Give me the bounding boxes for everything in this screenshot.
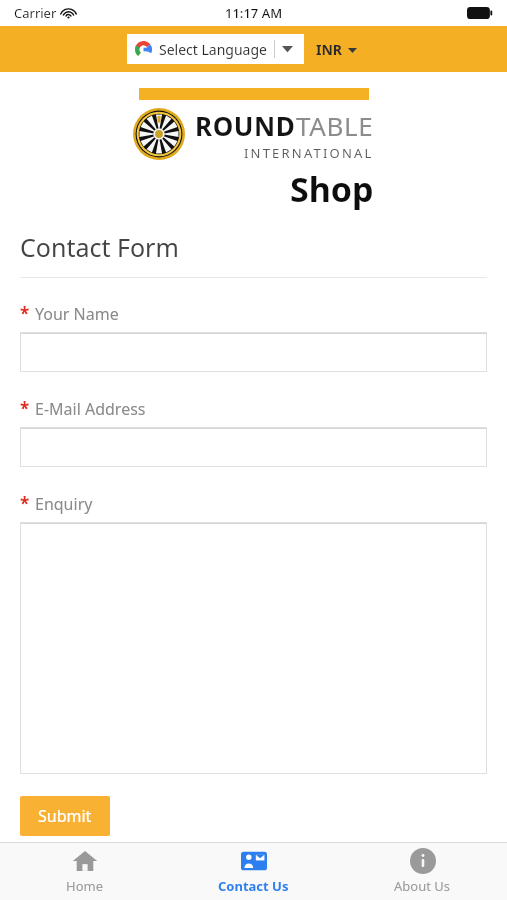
staticText: Enquiry: [35, 493, 93, 515]
button[interactable]: About Us: [338, 843, 507, 900]
staticText: Carrier: [14, 4, 57, 22]
button[interactable]: [20, 332, 487, 372]
button[interactable]: INR: [316, 40, 357, 59]
staticText: *: [20, 492, 30, 515]
staticText: 11:17 AM: [225, 4, 283, 22]
button[interactable]: Contact Us: [169, 843, 338, 900]
staticText: Home: [66, 877, 103, 895]
staticText: About Us: [394, 877, 451, 895]
button[interactable]: Submit: [20, 796, 110, 836]
staticText: ROUND: [195, 108, 296, 143]
staticText: Your Name: [35, 303, 119, 325]
staticText: INTERNATIONAL: [244, 144, 374, 162]
staticText: *: [20, 302, 30, 325]
staticText: TABLE: [296, 108, 374, 143]
staticText: Shop: [290, 166, 374, 212]
button[interactable]: Home: [0, 843, 169, 900]
other: Contact Us: [241, 848, 267, 874]
staticText: INR: [316, 40, 343, 59]
staticText: Submit: [38, 805, 92, 827]
button[interactable]: [20, 427, 487, 467]
staticText: E-Mail Address: [35, 398, 146, 420]
button[interactable]: Select Language: [127, 34, 304, 64]
other: About Us: [410, 848, 436, 874]
staticText: *: [20, 397, 30, 420]
other: Home: [72, 848, 98, 874]
button[interactable]: [20, 522, 487, 774]
staticText: Select Language: [159, 40, 267, 59]
staticText: Contact Form: [20, 230, 179, 264]
staticText: Contact Us: [218, 877, 289, 895]
